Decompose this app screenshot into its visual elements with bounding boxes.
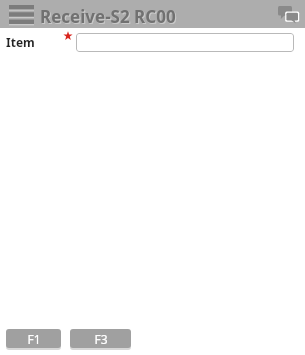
staticText: F1 — [27, 331, 41, 347]
staticText: Item — [6, 34, 35, 50]
staticText: Receive-S2 RC00 — [41, 6, 177, 29]
button[interactable]: F3 — [70, 329, 131, 350]
staticText: Receive-S2 RC00 — [40, 5, 176, 28]
button[interactable]: Messages — [275, 1, 301, 27]
staticText: F3 — [94, 331, 108, 347]
button[interactable]: Item input field — [76, 33, 294, 52]
button[interactable]: F1 — [6, 329, 61, 350]
button[interactable]: Menu — [5, 0, 38, 28]
